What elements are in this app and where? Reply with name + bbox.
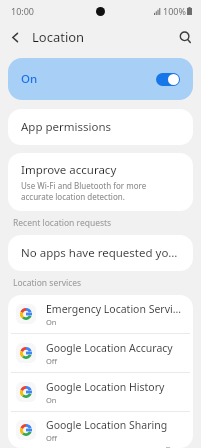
staticText: On — [21, 71, 38, 87]
staticText: 10:00 — [11, 5, 35, 17]
button[interactable]: Search — [169, 22, 201, 52]
staticText: Google Location History — [46, 380, 165, 394]
button[interactable]: Google Location History — [8, 373, 193, 411]
button[interactable]: Back — [0, 22, 30, 52]
staticText: App permissions — [21, 119, 112, 135]
staticText: On — [46, 395, 57, 405]
button[interactable]: Improve accuracy — [8, 153, 193, 211]
staticText: Location — [32, 28, 85, 46]
staticText: Recent location requests — [13, 217, 112, 229]
staticText: Off — [46, 356, 58, 366]
staticText: Emergency Location Service — [46, 302, 183, 316]
button[interactable]: On — [8, 58, 193, 100]
staticText: Off — [46, 433, 58, 443]
staticText: 100% — [163, 5, 186, 17]
staticText: Google Location Accuracy — [46, 341, 173, 355]
staticText: On — [46, 317, 57, 327]
staticText: No apps have requested your location.. — [21, 245, 180, 261]
button[interactable]: Emergency Location Service — [8, 295, 193, 333]
button[interactable]: Google Location Accuracy — [8, 334, 193, 372]
staticText: Improve accuracy — [21, 162, 117, 178]
staticText: Use Wi-Fi and Bluetooth for more accurat… — [21, 180, 180, 202]
staticText: Location services — [13, 277, 82, 289]
staticText: Google Location Sharing — [46, 418, 168, 432]
button[interactable]: App permissions — [8, 109, 193, 145]
button[interactable]: Google Location Sharing — [8, 412, 193, 448]
button[interactable]: No apps have requested your location.. — [8, 235, 193, 271]
